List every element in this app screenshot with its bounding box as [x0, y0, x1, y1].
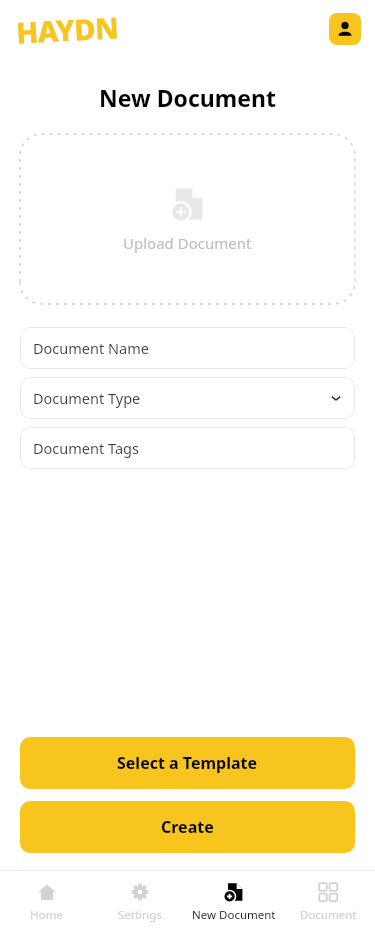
button[interactable]: Profile: [329, 13, 361, 45]
staticText: Upload Document: [123, 233, 252, 253]
button[interactable]: Settings: [93, 871, 187, 934]
button[interactable]: Select a Template: [20, 737, 355, 789]
button[interactable]: Document Tags: [20, 427, 355, 469]
staticText: Select a Template: [117, 752, 258, 774]
staticText: HAYDN: [15, 7, 120, 52]
button[interactable]: Document: [281, 871, 375, 934]
button[interactable]: Create: [20, 801, 355, 853]
staticText: Create: [161, 816, 214, 838]
staticText: Document Name: [33, 338, 149, 358]
staticText: Home: [30, 907, 63, 923]
button[interactable]: Upload Document: [20, 134, 355, 304]
button[interactable]: Document Type: [20, 377, 355, 419]
button[interactable]: Home: [0, 871, 93, 934]
staticText: Document Tags: [33, 438, 139, 458]
staticText: New Document: [192, 907, 276, 923]
staticText: Settings: [118, 907, 162, 923]
button[interactable]: HAYDN: [15, 7, 120, 52]
staticText: New Document: [99, 82, 276, 113]
staticText: Document Type: [33, 388, 141, 408]
staticText: Document: [300, 907, 357, 923]
button[interactable]: New Document: [187, 871, 281, 934]
button[interactable]: Document Name: [20, 327, 355, 369]
